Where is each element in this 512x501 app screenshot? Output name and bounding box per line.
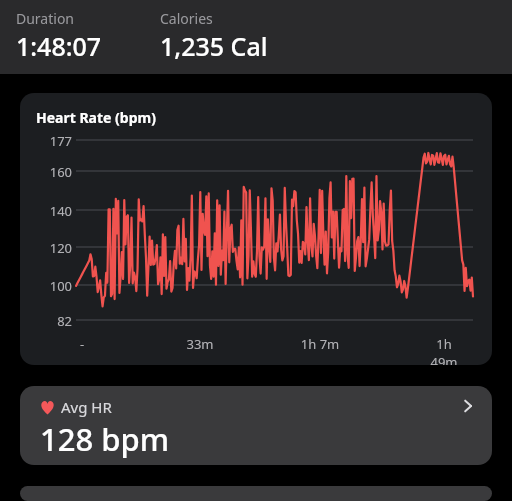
button[interactable] [20, 486, 492, 501]
staticText: 120 [28, 239, 72, 257]
staticText: 82 [28, 312, 72, 330]
staticText: 160 [28, 163, 72, 181]
staticText: 1:48:07 [16, 29, 102, 63]
staticText: 1h 7m [300, 335, 340, 353]
staticText: Duration [16, 9, 75, 28]
other: Heart rate [40, 400, 55, 415]
button[interactable]: Heart rate [20, 386, 492, 465]
staticText: 1,235 Cal [160, 29, 268, 63]
staticText: Calories [160, 9, 213, 28]
button[interactable]: Heart Rate (bpm) [20, 93, 492, 365]
staticText: 33m [180, 335, 220, 353]
staticText: 177 [28, 132, 72, 150]
staticText: 128 bpm [40, 418, 170, 460]
staticText: 140 [28, 202, 72, 220]
button[interactable]: Show details [454, 392, 482, 420]
staticText: - [62, 335, 102, 353]
staticText: Avg HR [61, 397, 112, 417]
staticText: 1h 49m [424, 335, 464, 365]
staticText: Heart Rate (bpm) [36, 108, 156, 127]
staticText: 100 [28, 277, 72, 295]
